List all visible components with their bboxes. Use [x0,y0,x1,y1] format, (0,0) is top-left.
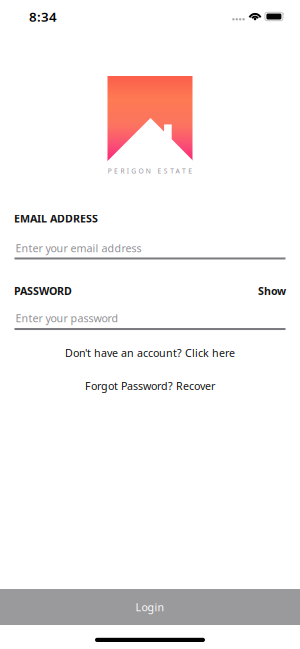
staticText: 8:34 [29,8,57,25]
staticText: EMAIL ADDRESS [14,211,98,226]
button[interactable]: Enter your email address [0,225,300,255]
staticText: Enter your password [15,311,118,325]
staticText: Don't have an account? Click here [65,346,235,360]
staticText: Login [135,600,164,614]
staticText: Enter your email address [15,241,141,255]
staticText: PASSWORD [14,284,72,298]
staticText: Forgot Password? Recover [85,379,215,393]
staticText: Show [258,284,286,298]
staticText: PERIGON ESTATE [108,166,192,175]
button[interactable]: Enter your password [0,298,300,325]
button[interactable]: Don't have an account? Click here [0,346,300,360]
button[interactable]: Show [258,284,286,298]
button[interactable]: Login [0,589,300,625]
button[interactable]: Forgot Password? Recover [0,379,300,393]
